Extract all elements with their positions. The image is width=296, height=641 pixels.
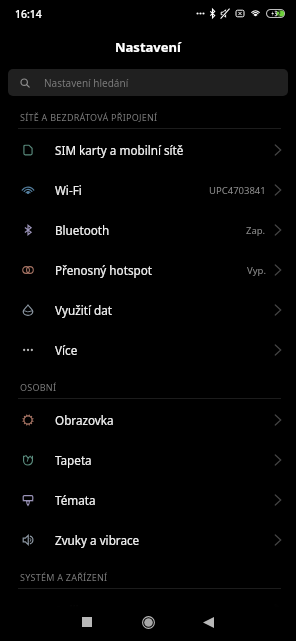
staticText: Vyp. — [247, 264, 266, 277]
staticText: Wi-Fi — [55, 182, 82, 198]
staticText: SÍTĚ A BEZDRÁTOVÁ PŘIPOJENÍ — [20, 111, 158, 123]
staticText: Přenosný hotspot — [55, 262, 152, 278]
button[interactable]: Více — [0, 329, 296, 369]
staticText: Tapeta — [55, 452, 92, 468]
staticText: SYSTÉM A ZAŘÍZENÍ — [20, 571, 108, 583]
staticText: Témata — [55, 492, 96, 508]
staticText: Více — [55, 342, 78, 358]
button[interactable]: SIM karty a mobilní sítě — [0, 129, 296, 169]
staticText: 16:14 — [15, 7, 42, 21]
button[interactable]: Nastavení hledání — [8, 69, 288, 96]
staticText: Bluetooth — [55, 222, 110, 238]
button[interactable]: Aplikace — [0, 589, 296, 629]
button[interactable]: Využití dat — [0, 289, 296, 329]
staticText: Obrazovka — [55, 412, 114, 428]
staticText: SIM karty a mobilní sítě — [55, 142, 184, 158]
staticText: Zap. — [246, 224, 266, 237]
button[interactable]: Tapeta — [0, 439, 296, 479]
button[interactable]: Přenosný hotspot — [0, 249, 296, 289]
staticText: Zvuky a vibrace — [55, 532, 140, 548]
staticText: Nastavení hledání — [44, 76, 129, 90]
button[interactable]: Bluetooth — [0, 209, 296, 249]
staticText: OSOBNÍ — [20, 381, 57, 393]
button[interactable]: Témata — [0, 479, 296, 519]
button[interactable]: Zvuky a vibrace — [0, 519, 296, 559]
button[interactable]: Wi-Fi — [0, 169, 296, 209]
staticText: Nastavení — [115, 38, 181, 56]
button[interactable]: Obrazovka — [0, 399, 296, 439]
button[interactable]: Home — [125, 607, 171, 637]
staticText: Využití dat — [55, 302, 112, 318]
staticText: Aplikace — [55, 602, 101, 618]
button[interactable]: Recents — [64, 607, 110, 637]
staticText: UPC4703841 — [209, 184, 266, 197]
button[interactable]: Back — [185, 607, 231, 637]
